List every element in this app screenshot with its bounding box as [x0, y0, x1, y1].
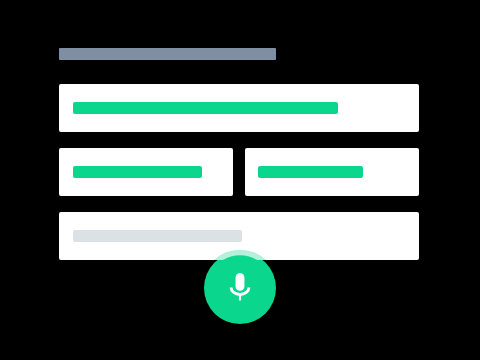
button[interactable]: Result one	[59, 84, 419, 132]
button[interactable]: Result four	[59, 212, 419, 260]
button[interactable]: Result two	[59, 148, 233, 196]
button[interactable]: Result three	[245, 148, 419, 196]
button[interactable]: Voice search	[204, 252, 276, 324]
